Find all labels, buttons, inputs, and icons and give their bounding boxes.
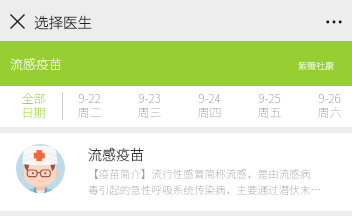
staticText: 流感疫苗 (88, 144, 144, 164)
staticText: 选择医生 (34, 11, 92, 32)
staticText: 全部 日期 (21, 89, 46, 120)
button[interactable]: 全部 日期 (7, 84, 60, 125)
staticText: 紫薇社康 (298, 59, 335, 72)
button[interactable]: Close (0, 0, 34, 41)
button[interactable]: 9-22 周二 (59, 84, 119, 125)
staticText: 9-22 周二 (77, 89, 102, 120)
button[interactable]: 9-24 周四 (179, 84, 239, 125)
staticText: 【疫苗简介】流行性感冒简称流感，是由流感病 毒引起的急性呼吸系统传染病，主要通过… (88, 166, 340, 197)
staticText: 9-24 周四 (197, 89, 222, 120)
button[interactable]: 流感疫苗 (0, 133, 352, 211)
staticText: 9-23 周三 (137, 89, 162, 120)
staticText: 9-25 周五 (257, 89, 282, 120)
staticText: 流感疫苗 (10, 54, 63, 73)
button[interactable]: More options (312, 0, 352, 41)
button[interactable]: 9-25 周五 (239, 84, 299, 125)
staticText: 9-26 周六 (317, 89, 342, 120)
button[interactable]: 9-23 周三 (119, 84, 179, 125)
button[interactable]: 9-26 周六 (299, 84, 352, 125)
